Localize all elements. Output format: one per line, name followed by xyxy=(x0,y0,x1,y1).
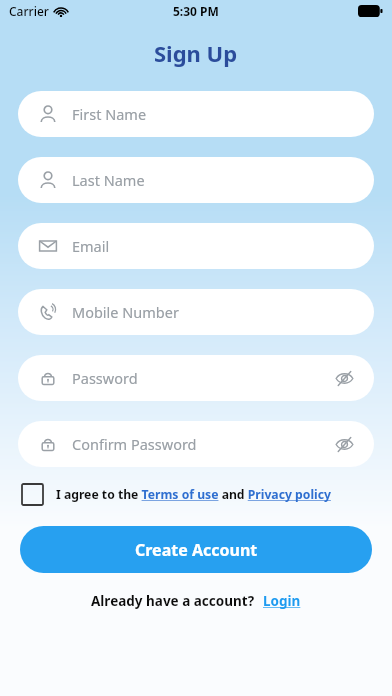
button[interactable]: Password xyxy=(18,355,374,401)
staticText: First Name xyxy=(72,104,356,124)
button[interactable]: Confirm Password xyxy=(18,421,374,467)
staticText: Sign Up xyxy=(154,38,238,68)
button[interactable]: Last Name xyxy=(18,157,374,203)
button[interactable]: Toggle password visibility xyxy=(332,432,356,456)
staticText: I agree to the Terms of use and Privacy … xyxy=(56,486,331,503)
button[interactable]: Create Account xyxy=(20,526,372,573)
staticText: Already have a account? xyxy=(91,592,255,610)
button[interactable]: First Name xyxy=(18,91,374,137)
staticText: Last Name xyxy=(72,170,356,190)
staticText: Email xyxy=(72,236,356,256)
staticText: Confirm Password xyxy=(72,434,332,454)
button[interactable]: Email xyxy=(18,223,374,269)
button[interactable]: Agree to terms checkbox xyxy=(22,484,370,505)
button[interactable]: Agree to terms checkbox xyxy=(22,484,43,505)
staticText: Password xyxy=(72,368,332,388)
staticText: Carrier xyxy=(9,3,49,19)
button[interactable]: Toggle password visibility xyxy=(332,366,356,390)
button[interactable]: Login xyxy=(263,592,301,610)
staticText: Login xyxy=(263,592,301,610)
staticText: Create Account xyxy=(135,539,258,561)
button[interactable]: Mobile Number xyxy=(18,289,374,335)
staticText: 5:30 PM xyxy=(173,3,219,19)
staticText: Mobile Number xyxy=(72,302,356,322)
